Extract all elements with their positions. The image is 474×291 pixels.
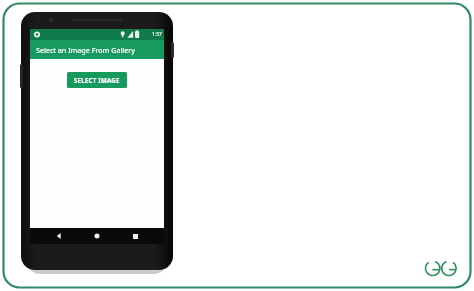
button[interactable]: Back bbox=[50, 228, 68, 244]
button[interactable]: SELECT IMAGE bbox=[67, 72, 127, 88]
button[interactable]: Select an Image From Gallery bbox=[30, 40, 164, 59]
button[interactable]: Recent apps bbox=[126, 228, 144, 244]
staticText: Select an Image From Gallery bbox=[36, 45, 135, 55]
staticText: 1:57 bbox=[152, 31, 162, 38]
button[interactable]: Home bbox=[88, 228, 106, 244]
staticText: SELECT IMAGE bbox=[74, 76, 120, 84]
other: GeeksforGeeks logo bbox=[424, 259, 458, 277]
